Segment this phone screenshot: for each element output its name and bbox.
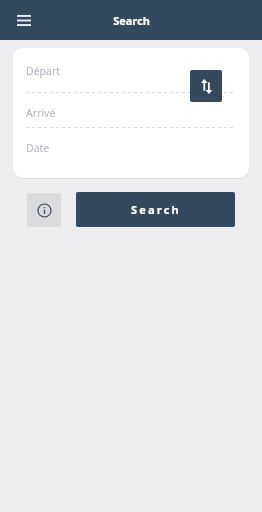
staticText: Search [131,202,181,217]
staticText: Arrivé [26,106,56,120]
button[interactable]: Information [27,193,61,227]
staticText: Search [113,13,150,28]
button[interactable]: Swap departure and arrival [190,70,222,102]
button[interactable]: Départ [26,64,236,92]
button[interactable]: Search [76,192,235,227]
staticText: Date [26,141,50,155]
button[interactable]: Date [26,141,236,161]
staticText: Départ [26,64,61,78]
button[interactable]: Open navigation menu [8,4,40,36]
button[interactable]: Arrivé [26,106,236,127]
